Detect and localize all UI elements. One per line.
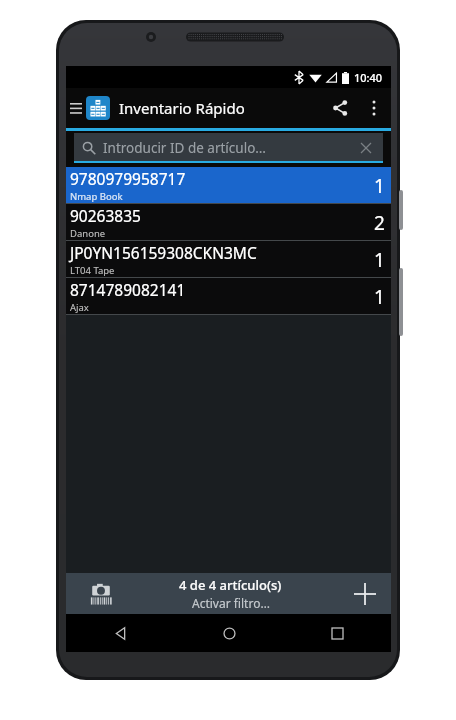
staticText: JP0YN156159308CKN3MC xyxy=(70,242,257,263)
staticText: 2 xyxy=(374,210,385,236)
button[interactable]: Clear search xyxy=(357,139,375,157)
staticText: 9780979958717 xyxy=(70,168,186,189)
staticText: 1 xyxy=(374,173,385,199)
button[interactable]: 9780979958717 xyxy=(66,167,391,204)
button[interactable]: Add item xyxy=(343,573,387,614)
button[interactable]: Open navigation drawer xyxy=(66,88,86,128)
staticText: 90263835 xyxy=(70,205,141,226)
staticText: Ajax xyxy=(70,301,89,314)
staticText: 1 xyxy=(374,284,385,310)
staticText: Inventario Rápido xyxy=(119,98,245,118)
button[interactable]: More options xyxy=(359,88,389,128)
button[interactable]: Introducir ID de artículo… xyxy=(74,133,383,163)
button[interactable]: Scan barcode xyxy=(84,577,118,611)
staticText: 8714789082141 xyxy=(70,279,186,300)
button[interactable]: Back xyxy=(66,614,175,652)
staticText: Introducir ID de artículo… xyxy=(103,139,266,157)
staticText: 10:40 xyxy=(354,70,383,85)
button[interactable]: Home xyxy=(175,614,283,652)
staticText: LT04 Tape xyxy=(70,264,115,277)
button[interactable]: 90263835 xyxy=(66,204,391,241)
button[interactable]: 4 de 4 artículo(s) xyxy=(118,576,343,611)
button[interactable]: 8714789082141 xyxy=(66,278,391,315)
button[interactable]: Share xyxy=(321,88,359,128)
button[interactable]: Recent apps xyxy=(283,614,391,652)
staticText: Activar filtro… xyxy=(192,595,270,611)
staticText: Danone xyxy=(70,227,106,240)
staticText: 4 de 4 artículo(s) xyxy=(179,576,282,594)
staticText: Nmap Book xyxy=(70,190,123,203)
staticText: 1 xyxy=(374,247,385,273)
button[interactable]: JP0YN156159308CKN3MC xyxy=(66,241,391,278)
